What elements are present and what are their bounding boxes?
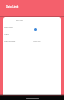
button[interactable]: Notify me: [33, 40, 41, 42]
button[interactable]: Max Limit: [4, 26, 13, 29]
staticText: Alert: [4, 33, 9, 36]
other: Limit enabled: [34, 28, 37, 31]
staticText: When exceeded: [4, 40, 16, 42]
button[interactable]: 800 MB: [16, 19, 23, 22]
button[interactable]: Data Limit: [0, 0, 64, 16]
staticText: Max Limit: [4, 26, 13, 29]
staticText: Notify me: [33, 40, 41, 42]
button[interactable]: Alert: [4, 33, 9, 36]
staticText: Data Limit: [6, 5, 19, 8]
button[interactable]: When exceeded: [4, 40, 16, 42]
staticText: 800 MB: [16, 19, 23, 22]
